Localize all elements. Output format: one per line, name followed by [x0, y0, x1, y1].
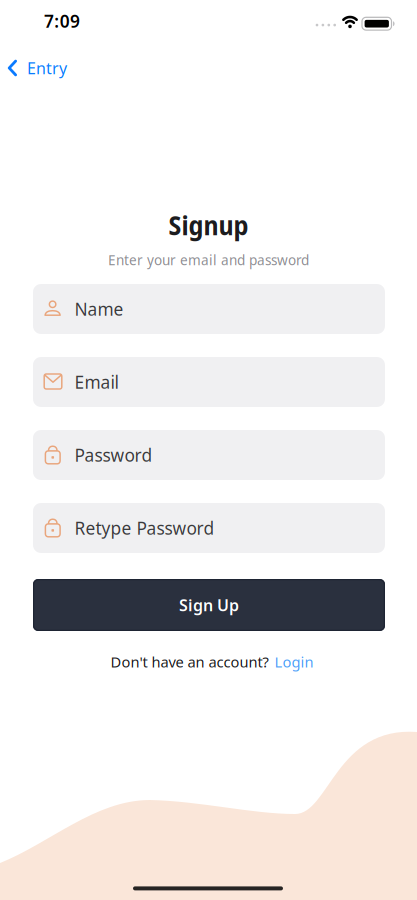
button[interactable]: Back to Entry [0, 54, 67, 82]
staticText: Name [74, 297, 123, 320]
staticText: Email [74, 370, 118, 393]
button[interactable]: Email [33, 357, 385, 407]
button[interactable]: Password [33, 430, 385, 480]
staticText: Entry [27, 57, 67, 79]
button[interactable]: Name [33, 284, 385, 334]
staticText: Signup [168, 206, 248, 243]
staticText: 7:09 [44, 9, 80, 32]
staticText: Password [74, 443, 152, 466]
staticText: Retype Password [74, 516, 214, 539]
staticText: Login [274, 652, 313, 671]
staticText: Sign Up [179, 594, 239, 616]
staticText: Don't have an account? [110, 652, 268, 671]
button[interactable]: Login [274, 652, 313, 671]
button[interactable]: Sign Up [33, 579, 385, 631]
staticText: Enter your email and password [108, 250, 309, 269]
button[interactable]: Retype Password [33, 503, 385, 553]
